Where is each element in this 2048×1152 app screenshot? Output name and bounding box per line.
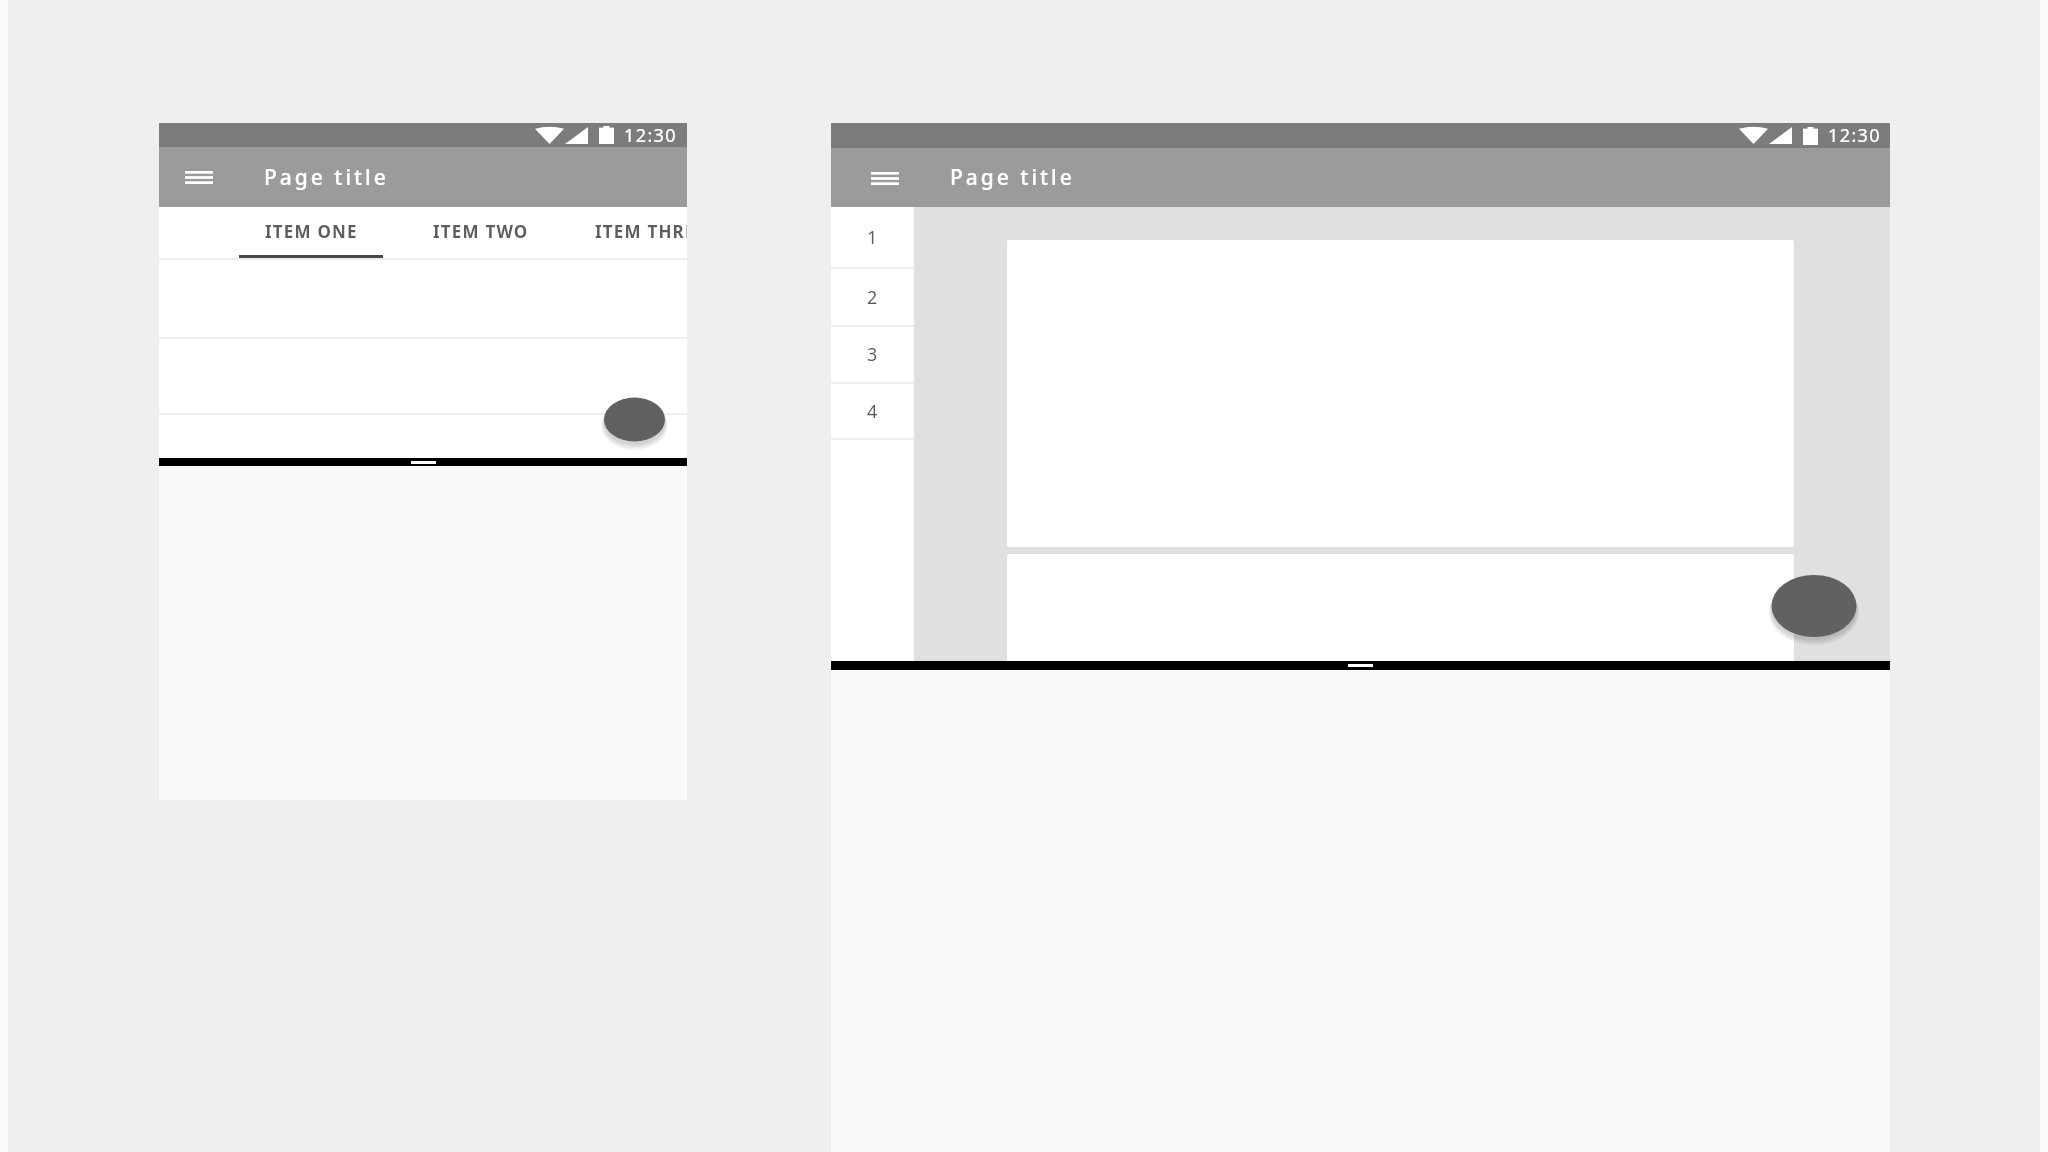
staticText: Page title xyxy=(950,163,1075,192)
staticText: ITEM ONE xyxy=(265,220,358,243)
staticText: 2 xyxy=(867,285,878,310)
button[interactable]: Open navigation menu xyxy=(871,166,899,190)
button[interactable] xyxy=(159,339,687,413)
button[interactable]: 2 xyxy=(831,269,914,325)
button[interactable]: ITEM ONE xyxy=(226,207,396,258)
button[interactable]: 4 xyxy=(831,384,914,438)
staticText: 12:30 xyxy=(624,123,678,147)
button[interactable]: Create xyxy=(1772,575,1857,637)
button[interactable]: ITEM THREE xyxy=(566,207,687,258)
staticText: 4 xyxy=(867,399,878,424)
staticText: 12:30 xyxy=(1828,123,1882,148)
button[interactable]: Open navigation menu xyxy=(185,165,213,189)
staticText: Page title xyxy=(264,163,389,192)
button[interactable] xyxy=(159,415,687,458)
button[interactable]: ITEM TWO xyxy=(396,207,566,258)
staticText: 1 xyxy=(867,225,878,250)
staticText: ITEM THREE xyxy=(595,220,687,243)
button[interactable] xyxy=(1007,554,1794,661)
staticText: 3 xyxy=(867,342,878,367)
button[interactable]: 3 xyxy=(831,327,914,382)
staticText: ITEM TWO xyxy=(433,220,529,243)
button[interactable] xyxy=(831,661,1890,670)
button[interactable] xyxy=(159,458,687,466)
button[interactable]: Create xyxy=(604,398,665,442)
button[interactable]: 1 xyxy=(831,207,914,267)
